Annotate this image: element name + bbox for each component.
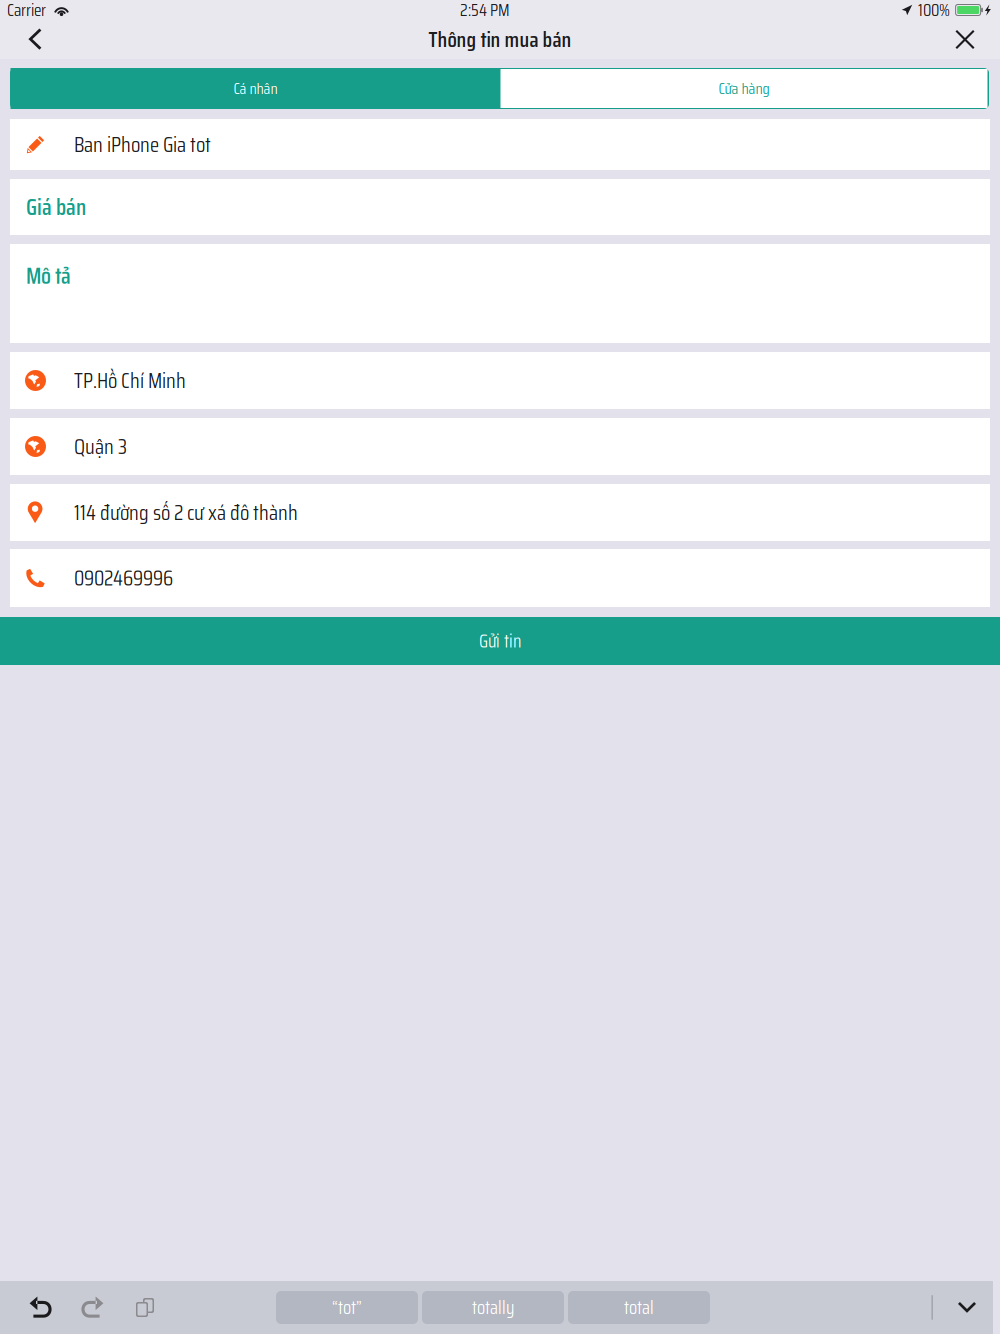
button[interactable]: Redo <box>71 1281 113 1334</box>
staticText: Gửi tin <box>479 626 521 656</box>
button[interactable]: Hide keyboard <box>941 1281 993 1334</box>
staticText: 0902469996 <box>74 561 173 595</box>
staticText: “tot” <box>332 1293 362 1322</box>
button[interactable]: Paste <box>124 1281 166 1334</box>
button[interactable]: Ban iPhone Gia tot <box>10 119 990 170</box>
button[interactable]: Gửi tin <box>0 617 1000 665</box>
staticText: Cá nhân <box>233 76 277 101</box>
button[interactable]: Undo <box>20 1281 62 1334</box>
button[interactable]: Back <box>9 20 61 59</box>
button[interactable]: 114 đường số 2 cư xá đô thành <box>10 484 990 541</box>
staticText: totally <box>472 1293 514 1322</box>
button[interactable]: Mô tả <box>10 244 990 343</box>
staticText: 100% <box>918 0 950 24</box>
staticText: total <box>624 1293 654 1322</box>
staticText: 2:54 PM <box>460 0 510 24</box>
button[interactable]: Cá nhân <box>10 68 500 109</box>
button[interactable]: Cửa hàng <box>500 68 988 109</box>
staticText: Thông tin mua bán <box>428 23 571 56</box>
button[interactable]: total <box>568 1291 710 1324</box>
staticText: Mô tả <box>26 258 71 294</box>
staticText: Cửa hàng <box>718 76 769 101</box>
staticText: Ban iPhone Gia tot <box>74 128 211 161</box>
button[interactable]: “tot” <box>276 1291 418 1324</box>
staticText: Giá bán <box>26 189 86 225</box>
button[interactable]: totally <box>422 1291 564 1324</box>
staticText: 114 đường số 2 cư xá đô thành <box>74 496 298 529</box>
button[interactable]: 0902469996 <box>10 549 990 607</box>
staticText: TP.Hồ Chí Minh <box>74 364 186 397</box>
button[interactable]: Quận 3 <box>10 418 990 475</box>
staticText: Carrier <box>7 0 46 24</box>
button[interactable]: TP.Hồ Chí Minh <box>10 352 990 409</box>
staticText: Quận 3 <box>74 430 127 463</box>
button[interactable]: Giá bán <box>10 179 990 235</box>
button[interactable]: Close <box>939 20 991 59</box>
